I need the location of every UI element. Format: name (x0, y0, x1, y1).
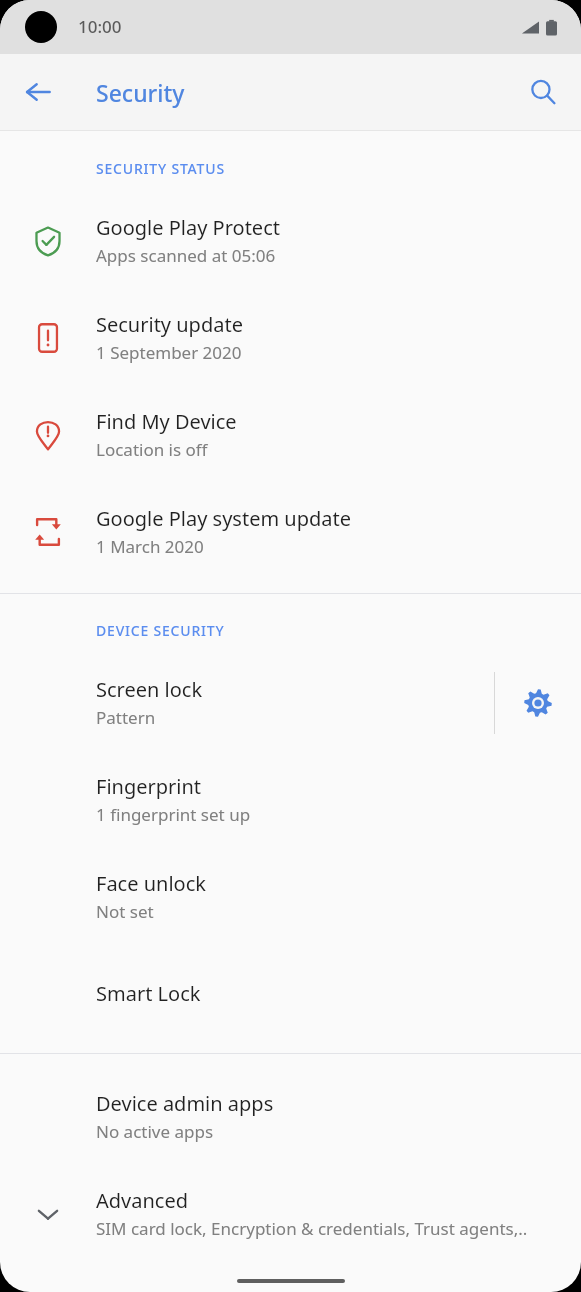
button[interactable]: Advanced (0, 1165, 581, 1262)
staticText: DEVICE SECURITY (96, 621, 225, 640)
staticText: Google Play system update (96, 505, 352, 532)
staticText: SIM card lock, Encryption & credentials,… (96, 1217, 528, 1240)
staticText: Fingerprint (96, 773, 202, 800)
button[interactable]: Security update (0, 289, 581, 386)
staticText: Screen lock (96, 676, 203, 703)
button[interactable]: Screen lock settings (495, 654, 581, 751)
staticText: Google Play Protect (96, 214, 280, 241)
staticText: Find My Device (96, 408, 237, 435)
staticText: Apps scanned at 05:06 (96, 244, 276, 267)
staticText: 10:00 (78, 15, 122, 38)
staticText: Security update (96, 311, 243, 338)
staticText: 1 September 2020 (96, 341, 242, 364)
button[interactable]: Screen lock (0, 654, 494, 751)
button[interactable]: Find My Device (0, 386, 581, 483)
staticText: Device admin apps (96, 1090, 274, 1117)
staticText: Advanced (96, 1187, 188, 1214)
staticText: 1 fingerprint set up (96, 803, 251, 826)
button[interactable]: Face unlock (0, 848, 581, 945)
button[interactable]: Google Play Protect (0, 192, 581, 289)
button[interactable]: Smart Lock (0, 945, 581, 1042)
staticText: Location is off (96, 438, 208, 461)
button[interactable]: Device admin apps (0, 1068, 581, 1165)
button[interactable]: Back (12, 66, 64, 118)
button[interactable]: Fingerprint (0, 751, 581, 848)
button[interactable]: Google Play system update (0, 483, 581, 580)
button[interactable]: Search (517, 66, 569, 118)
staticText: SECURITY STATUS (96, 159, 225, 178)
staticText: Pattern (96, 706, 156, 729)
staticText: No active apps (96, 1120, 214, 1143)
staticText: Security (96, 77, 185, 108)
staticText: Not set (96, 900, 154, 923)
staticText: Face unlock (96, 870, 206, 897)
staticText: Smart Lock (96, 980, 201, 1007)
staticText: 1 March 2020 (96, 535, 204, 558)
